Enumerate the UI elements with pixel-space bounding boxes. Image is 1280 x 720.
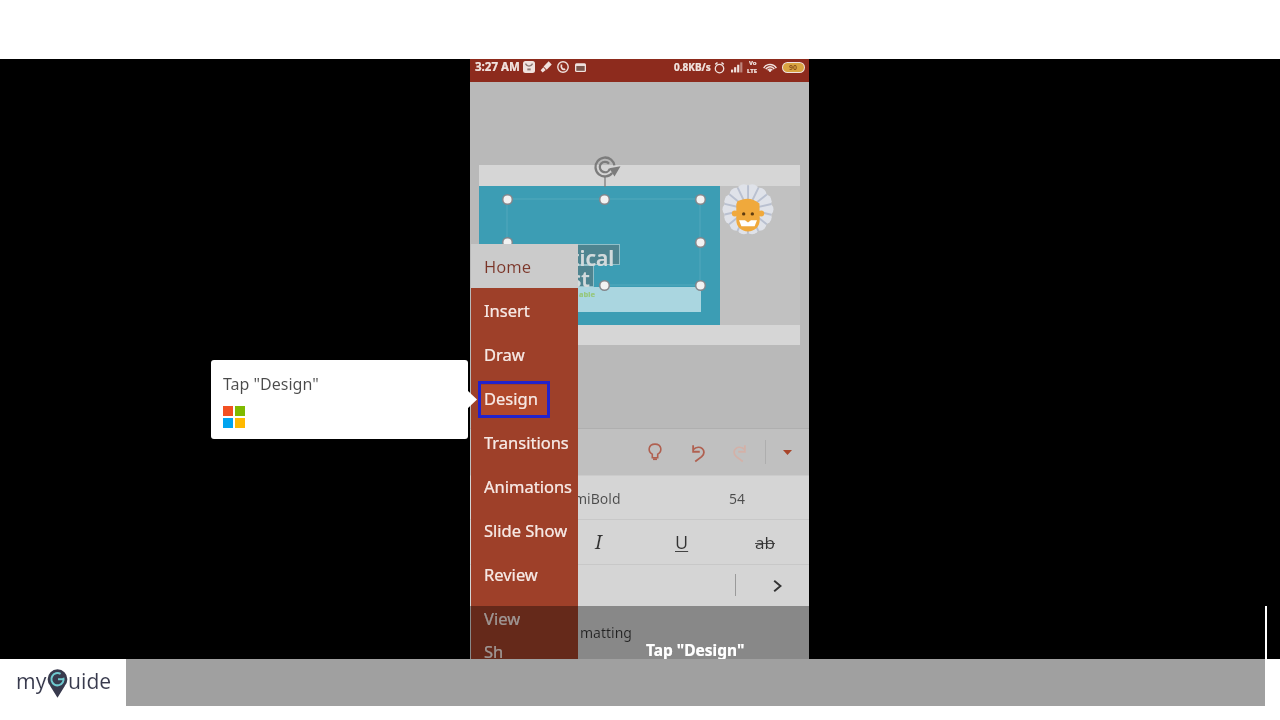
staticText: Review [484,563,538,585]
staticText: Transitions [484,431,569,453]
button[interactable]: ab [743,520,787,564]
staticText: miBold [574,489,621,508]
button[interactable]: Review [471,552,578,596]
staticText: uide [68,667,112,696]
staticText: able [579,289,595,299]
button[interactable]: Insert [471,288,578,332]
staticText: st [571,265,590,294]
button[interactable]: More options [772,429,802,475]
button[interactable]: U [660,520,704,564]
staticText: 54 [729,489,746,508]
staticText: View [484,607,521,629]
staticText: my [16,667,47,696]
staticText: 90 [789,63,798,72]
button[interactable]: Draw [471,332,578,376]
button[interactable]: Design [471,376,578,420]
staticText: 0.8KB/s [674,60,711,74]
button[interactable]: miBold [470,476,809,519]
staticText: Home [484,255,531,277]
button[interactable]: Slide Show [471,508,578,552]
staticText: Sh [484,640,504,659]
staticText: Insert [484,299,530,321]
button[interactable]: Home [471,244,578,288]
staticText: Slide Show [484,519,568,541]
staticText: I [595,529,602,555]
button[interactable]: Tell me [637,429,673,475]
staticText: Tap "Design" [223,373,319,395]
staticText: matting [580,623,632,642]
button[interactable]: Sh [471,640,578,659]
button[interactable]: Expand formatting [762,571,792,601]
button[interactable]: View [471,596,578,640]
button[interactable]: Redo [722,429,758,475]
button[interactable]: Transitions [471,420,578,464]
staticText: U [675,530,689,555]
staticText: 3:27 AM [475,59,520,75]
button[interactable]: I [576,520,620,564]
button[interactable]: Animations [471,464,578,508]
staticText: Tap "Design" [646,639,745,660]
staticText: Animations [484,475,572,497]
staticText: tical [571,244,615,273]
staticText: Vo [749,59,757,67]
staticText: LTE [747,67,758,75]
staticText: Design [484,387,538,409]
staticText: ab [755,531,775,554]
staticText: Draw [484,343,525,365]
button[interactable]: matting [470,606,809,660]
button[interactable]: Undo [679,429,715,475]
